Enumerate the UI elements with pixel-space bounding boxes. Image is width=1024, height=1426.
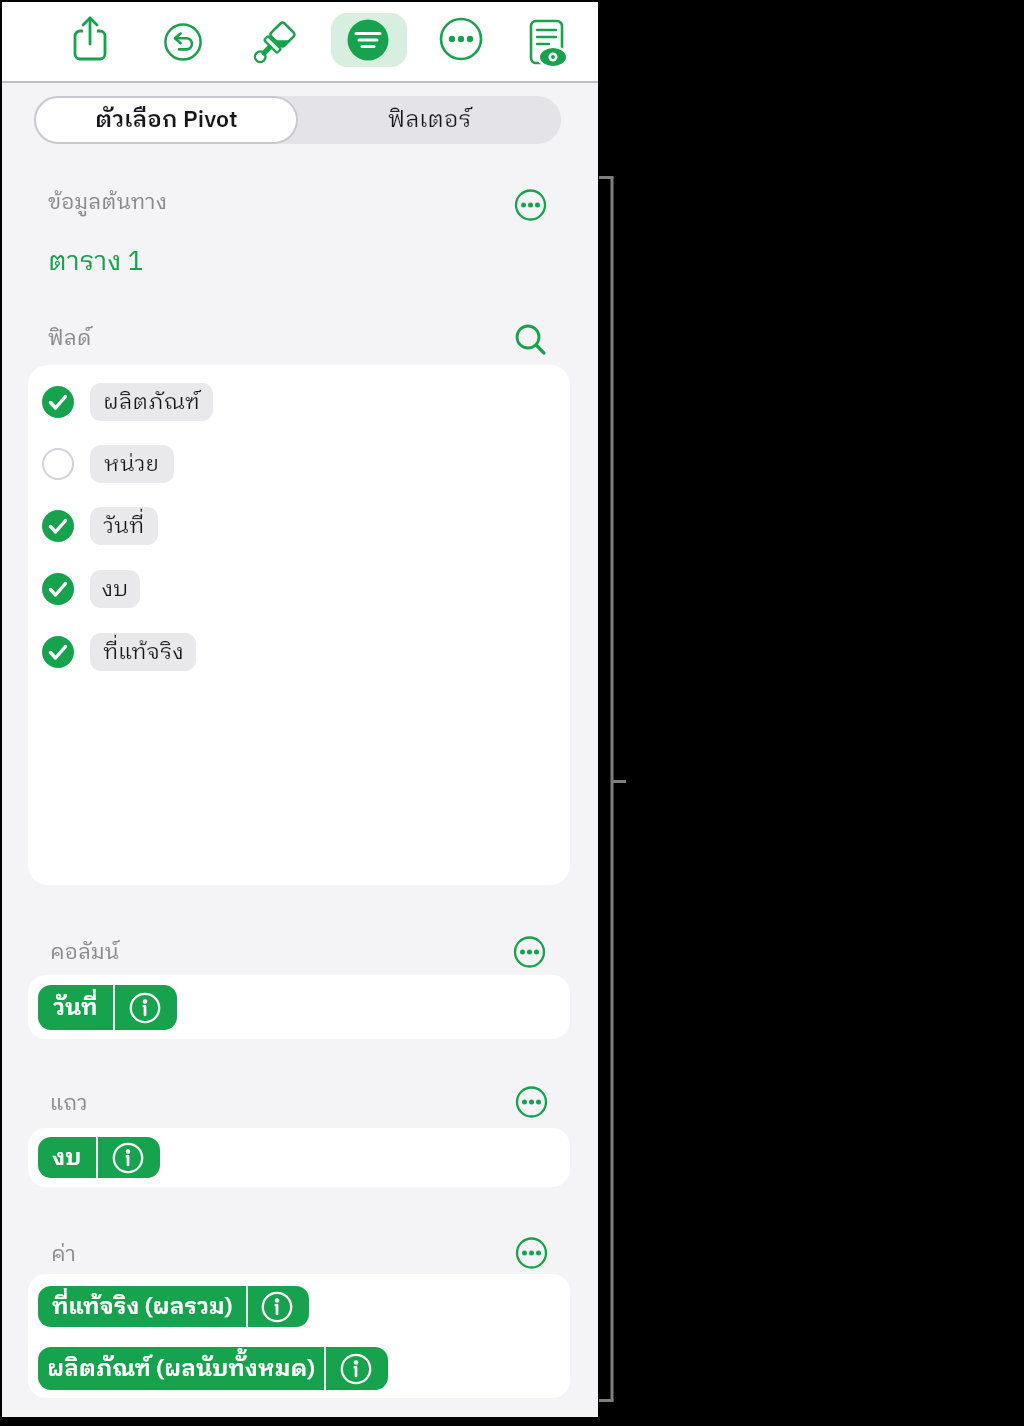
staticText: ที่แท้จริง [103,634,184,670]
button[interactable]: งบ [90,570,140,608]
button[interactable] [516,10,578,72]
staticText: ฟิลด์ [48,322,92,357]
button[interactable] [426,10,488,72]
staticText: ผลิตภัณฑ์ (ผลนับทั้งหมด) [47,1350,316,1388]
staticText: วันที่ [103,508,145,544]
button[interactable]: วันที่ [38,985,177,1030]
button[interactable] [240,10,302,72]
button[interactable] [150,10,212,72]
staticText: หน่วย [104,446,160,482]
button[interactable]: วันที่ [90,507,158,545]
button[interactable] [60,10,122,72]
button[interactable]: ผลิตภัณฑ์ (ผลนับทั้งหมด) [38,1347,388,1390]
staticText: ที่แท้จริง (ผลรวม) [52,1288,233,1326]
staticText: ฟิลเตอร์ [388,101,472,139]
button[interactable] [42,510,74,542]
button[interactable] [42,448,74,480]
button[interactable]: ฟิลเตอร์ [298,96,561,144]
button[interactable] [330,10,392,72]
staticText: ผลิตภัณฑ์ [103,384,200,420]
staticText: ค่า [51,1238,77,1273]
button[interactable]: ตัวเลือก Pivot [34,96,298,144]
button[interactable]: หน่วย [90,445,174,483]
staticText: ตาราง 1 [48,241,144,284]
button[interactable]: ตาราง 1 [48,241,144,284]
staticText: วันที่ [53,989,98,1027]
button[interactable]: ผลิตภัณฑ์ [90,383,213,421]
staticText: ข้อมูลต้นทาง [48,186,168,221]
button[interactable]: ที่แท้จริง [90,633,196,671]
staticText: งบ [52,1139,82,1177]
button[interactable] [42,636,74,668]
staticText: คอลัมน์ [50,936,120,971]
button[interactable]: ที่แท้จริง (ผลรวม) [38,1286,309,1327]
button[interactable] [331,13,407,67]
button[interactable]: งบ [38,1137,160,1178]
button[interactable] [42,573,74,605]
staticText: งบ [101,571,129,607]
staticText: แถว [50,1087,88,1122]
button[interactable] [42,386,74,418]
staticText: ตัวเลือก Pivot [95,101,238,139]
